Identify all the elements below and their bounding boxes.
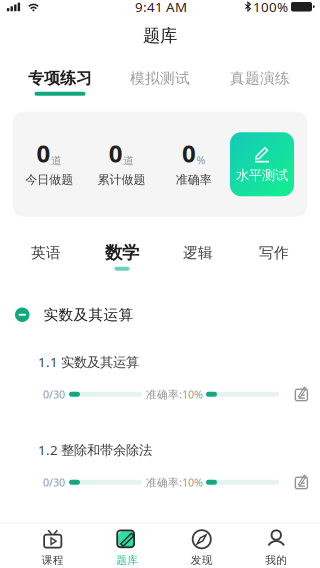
- staticText: 累计做题: [97, 172, 145, 187]
- staticText: 9:41 AM: [135, 0, 187, 16]
- button[interactable]: 逻辑: [160, 226, 236, 279]
- staticText: 准确率: [176, 172, 212, 187]
- staticText: 题库: [116, 554, 138, 567]
- staticText: 0/30: [43, 475, 65, 489]
- button[interactable]: 实数及其运算: [0, 279, 320, 339]
- button[interactable]: 水平测试: [230, 132, 294, 196]
- staticText: 专项练习: [28, 68, 92, 88]
- staticText: 模拟测试: [130, 69, 190, 87]
- staticText: 写作: [259, 244, 289, 262]
- staticText: 0/30: [43, 387, 65, 401]
- staticText: 发现: [191, 554, 213, 567]
- staticText: 道: [123, 154, 134, 167]
- staticText: 1.2 整除和带余除法: [38, 441, 152, 459]
- staticText: %: [197, 153, 206, 167]
- staticText: 真题演练: [230, 69, 290, 87]
- button[interactable]: 题库: [90, 523, 164, 568]
- staticText: 数学: [105, 242, 139, 263]
- button[interactable]: 写作: [236, 226, 312, 279]
- staticText: 题库: [143, 25, 177, 46]
- button[interactable]: 真题演练: [210, 57, 310, 102]
- button[interactable]: 模拟测试: [110, 57, 210, 102]
- button[interactable]: 课程: [15, 523, 90, 568]
- staticText: 实数及其运算: [43, 306, 133, 324]
- button[interactable]: 1.1 实数及其运算: [0, 339, 320, 427]
- staticText: 今日做题: [25, 172, 73, 187]
- staticText: 准确率:10%: [146, 387, 203, 401]
- staticText: 课程: [42, 554, 64, 567]
- staticText: 水平测试: [236, 167, 288, 183]
- button[interactable]: 我的: [239, 523, 313, 568]
- button[interactable]: 英语: [8, 226, 84, 279]
- staticText: 100%: [253, 0, 288, 16]
- staticText: 准确率:10%: [146, 475, 203, 489]
- staticText: 逻辑: [183, 244, 213, 262]
- staticText: 0: [182, 137, 196, 169]
- staticText: 道: [51, 154, 62, 167]
- staticText: 我的: [265, 554, 287, 567]
- staticText: 英语: [31, 244, 61, 262]
- button[interactable]: 1.2 整除和带余除法: [0, 427, 320, 515]
- staticText: 0: [36, 137, 50, 169]
- staticText: 0: [109, 137, 123, 169]
- staticText: 1.1 实数及其运算: [38, 353, 139, 371]
- button[interactable]: 专项练习: [10, 57, 110, 102]
- button[interactable]: 发现: [164, 523, 239, 568]
- button[interactable]: 数学: [84, 226, 160, 279]
